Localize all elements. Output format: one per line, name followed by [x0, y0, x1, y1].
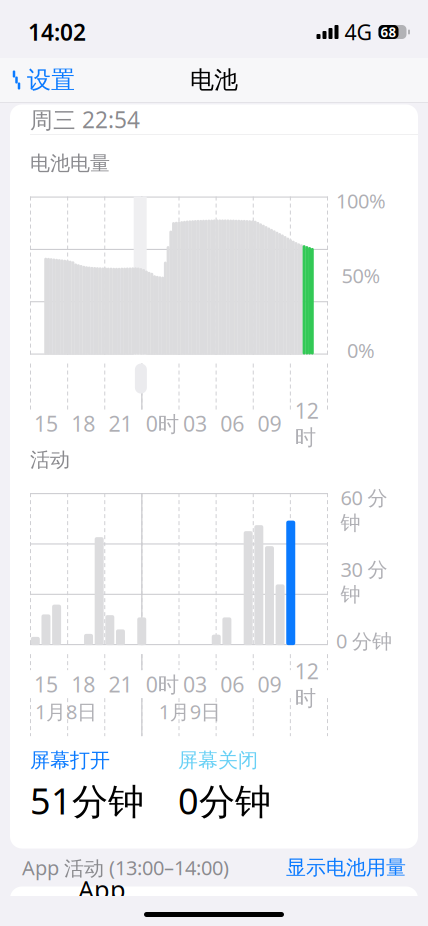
staticText: 12时 — [295, 396, 319, 451]
staticText: 1月8日 — [35, 698, 97, 725]
staticText: 1月9日 — [159, 698, 221, 725]
staticText: App 活动 (13:00–14:00) — [22, 854, 229, 881]
staticText: 18 — [71, 670, 95, 698]
staticText: 电池 — [190, 65, 238, 95]
staticText: 60 分钟 — [340, 484, 387, 535]
staticText: 15 — [34, 409, 58, 438]
staticText: 51分钟 — [30, 777, 144, 824]
staticText: 屏幕关闭 — [178, 748, 258, 773]
staticText: 14:02 — [28, 17, 86, 47]
staticText: 30 分钟 — [340, 556, 387, 607]
button[interactable]: A — [10, 886, 418, 926]
staticText: 0分钟 — [178, 777, 271, 824]
staticText: 显示电池用量 — [286, 855, 406, 880]
staticText: 50% — [341, 262, 380, 289]
staticText: 09 — [257, 409, 281, 438]
staticText: 0% — [347, 337, 375, 364]
staticText: 0时 — [146, 670, 179, 698]
staticText: App Store — [78, 873, 140, 926]
staticText: 活动 — [30, 448, 70, 472]
button[interactable]: 显示电池用量 — [286, 855, 406, 880]
staticText: 15 — [34, 670, 58, 698]
staticText: 18 — [71, 409, 95, 438]
staticText: 0 分钟 — [336, 628, 392, 654]
staticText: 06 — [220, 409, 244, 438]
staticText: 设置 — [27, 65, 75, 95]
staticText: 12时 — [295, 657, 319, 711]
staticText: 03 — [183, 409, 207, 438]
staticText: 03 — [183, 670, 207, 698]
staticText: 06 — [220, 670, 244, 698]
staticText: 屏幕打开 — [30, 748, 110, 773]
staticText: 09 — [257, 670, 281, 698]
button[interactable]: 设置 — [0, 56, 75, 104]
staticText: 4G — [344, 18, 372, 46]
staticText: 0时 — [146, 409, 179, 438]
staticText: 68 — [380, 23, 396, 41]
staticText: 100% — [336, 188, 386, 214]
staticText: 电池电量 — [30, 151, 110, 176]
staticText: 21 — [108, 670, 132, 698]
staticText: 21 — [108, 409, 132, 438]
staticText: 周三 22:54 — [30, 104, 140, 134]
